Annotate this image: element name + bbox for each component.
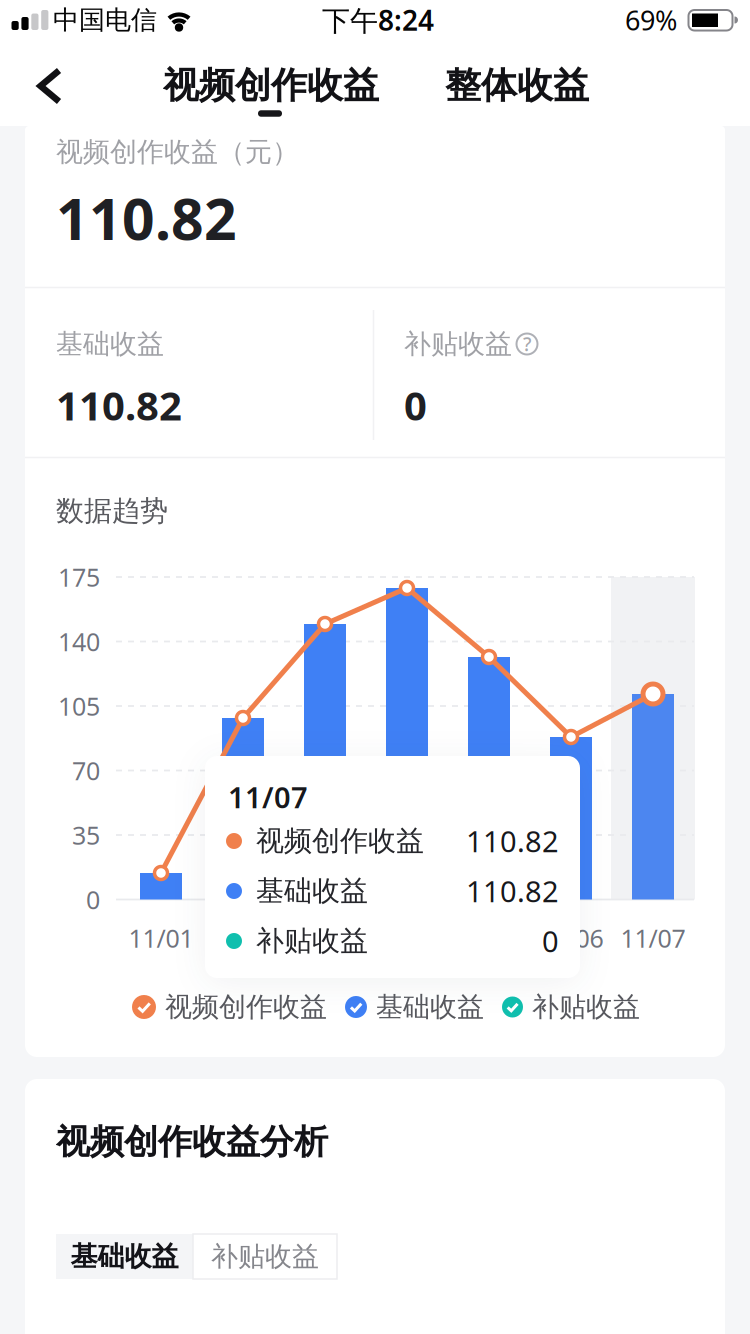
staticText: 中国电信: [53, 4, 157, 36]
button[interactable]: 返回: [33, 61, 83, 111]
button[interactable]: 基础收益: [56, 1234, 193, 1279]
button[interactable]: 视频创作收益: [132, 990, 327, 1024]
staticText: 11/06: [538, 921, 603, 955]
staticText: 视频创作收益: [165, 990, 327, 1024]
staticText: 69%: [625, 2, 677, 38]
staticText: 175: [58, 560, 100, 594]
staticText: 110.82: [56, 180, 237, 256]
button[interactable]: 补贴收益: [193, 1234, 337, 1279]
staticText: 补贴收益: [211, 1240, 319, 1273]
staticText: 视频创作收益: [163, 63, 379, 108]
staticText: 11/03: [292, 921, 357, 955]
staticText: 11/01: [128, 921, 193, 955]
staticText: 视频创作收益: [256, 824, 424, 858]
staticText: ?: [523, 331, 531, 357]
button[interactable]: 补贴收益: [502, 990, 640, 1024]
staticText: 105: [58, 689, 100, 723]
staticText: 110.82: [56, 378, 182, 431]
staticText: 补贴收益: [404, 327, 512, 361]
staticText: 补贴收益: [532, 990, 640, 1024]
button[interactable]: 视频创作收益: [141, 42, 401, 128]
staticText: 11/07: [620, 921, 685, 955]
staticText: 整体收益: [445, 63, 589, 108]
staticText: 视频创作收益（元）: [56, 135, 299, 169]
staticText: 基础收益: [56, 327, 164, 361]
staticText: 110.82: [466, 822, 559, 860]
staticText: 基础收益: [256, 874, 368, 908]
button[interactable]: 补贴收益说明: [511, 328, 543, 360]
staticText: 35: [72, 818, 100, 852]
staticText: 110.82: [466, 872, 559, 910]
button[interactable]: 整体收益: [417, 42, 617, 128]
staticText: 基础收益: [70, 1240, 178, 1273]
staticText: 140: [58, 625, 100, 658]
staticText: 下午8:24: [322, 1, 434, 39]
staticText: 70: [72, 754, 100, 787]
staticText: 视频创作收益分析: [56, 1121, 328, 1163]
staticText: 0: [86, 883, 100, 916]
staticText: 数据趋势: [56, 494, 168, 528]
staticText: 11/02: [210, 921, 275, 955]
staticText: 补贴收益: [256, 924, 368, 958]
staticText: 基础收益: [376, 990, 484, 1024]
staticText: 0: [542, 922, 559, 960]
staticText: 11/07: [228, 778, 308, 816]
button[interactable]: 基础收益: [345, 990, 484, 1024]
staticText: 0: [404, 378, 427, 431]
